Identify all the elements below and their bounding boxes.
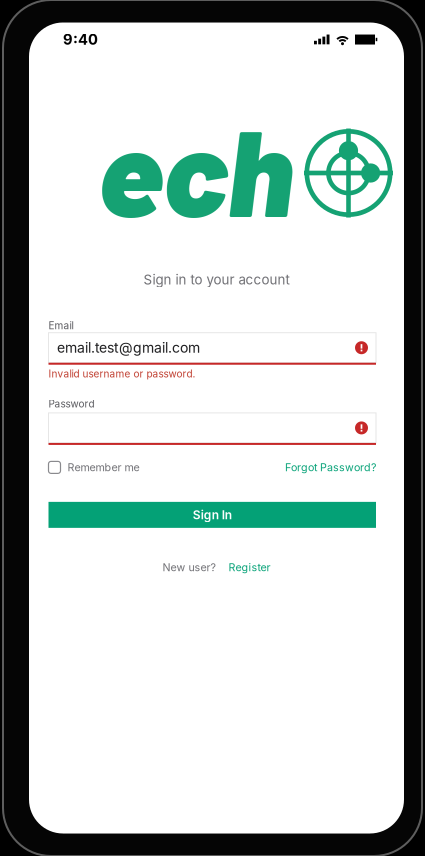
staticText: 9:40 xyxy=(63,31,98,48)
staticText: email.test@gmail.com xyxy=(57,339,200,356)
staticText: Register xyxy=(228,561,270,574)
staticText: Remember me xyxy=(67,461,139,474)
button[interactable]: Forgot Password? xyxy=(285,461,376,474)
button[interactable]: Remember me xyxy=(48,461,139,474)
staticText: Password xyxy=(48,398,94,410)
staticText: Invalid username or password. xyxy=(48,368,195,380)
button[interactable] xyxy=(48,413,376,443)
button[interactable]: Register xyxy=(215,561,270,574)
staticText: Email xyxy=(48,320,73,332)
staticText: Forgot Password? xyxy=(285,461,376,474)
staticText: Sign in to your account xyxy=(143,271,289,288)
staticText: Sign In xyxy=(193,508,232,522)
button[interactable]: Sign In xyxy=(48,502,376,528)
button[interactable]: email.test@gmail.com xyxy=(48,333,376,363)
staticText: New user? xyxy=(162,561,215,574)
staticText: ech xyxy=(98,96,293,241)
